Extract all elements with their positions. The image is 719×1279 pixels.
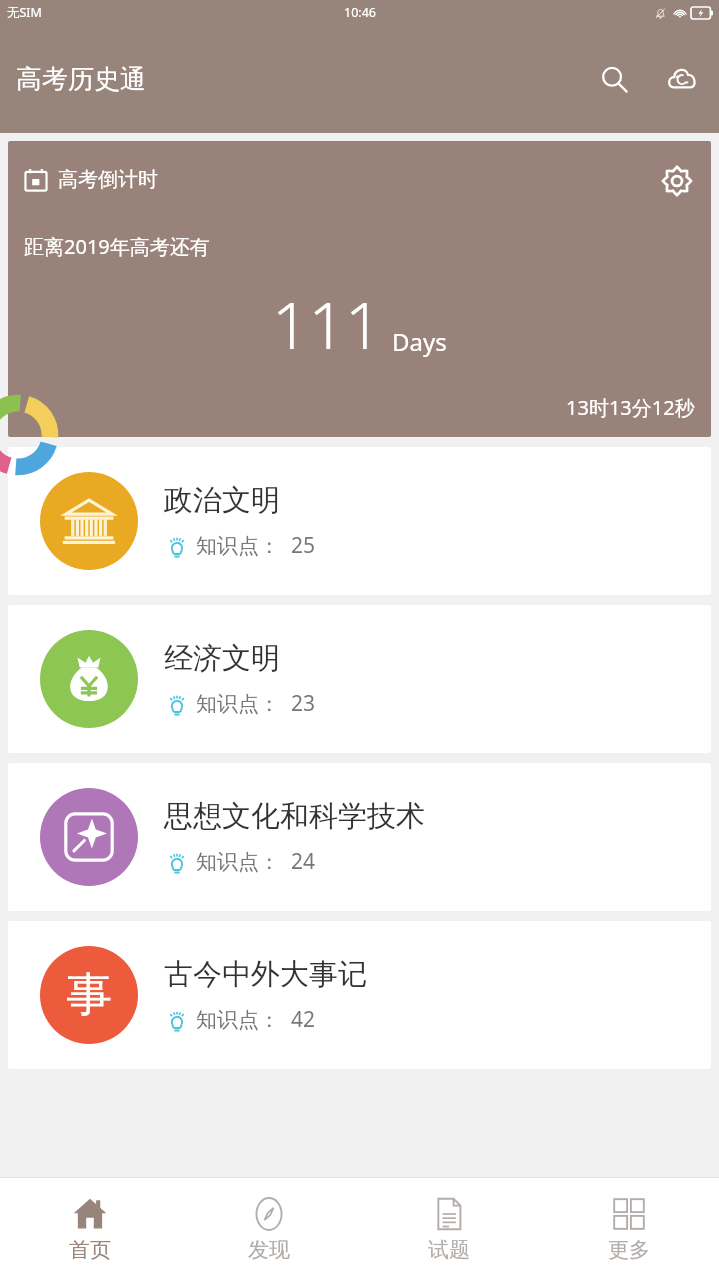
- staticText: 距离2019年高考还有: [24, 233, 210, 260]
- button[interactable]: 经济文明: [8, 605, 711, 753]
- button[interactable]: 首页: [0, 1178, 179, 1279]
- button[interactable]: Search: [591, 56, 637, 102]
- button[interactable]: 高考倒计时: [8, 141, 711, 437]
- staticText: 高考倒计时: [58, 167, 158, 192]
- staticText: 知识点： 42: [196, 1005, 315, 1034]
- button[interactable]: Assistant: [0, 393, 60, 477]
- staticText: 古今中外大事记: [164, 956, 367, 993]
- button[interactable]: 思想文化和科学技术: [8, 763, 711, 911]
- staticText: 思想文化和科学技术: [164, 798, 425, 835]
- staticText: 111: [272, 281, 382, 368]
- staticText: 试题: [428, 1237, 470, 1263]
- staticText: 13时13分12秒: [566, 394, 695, 421]
- staticText: 事: [66, 966, 112, 1024]
- button[interactable]: Sync: [659, 56, 705, 102]
- button[interactable]: 政治文明: [8, 447, 711, 595]
- staticText: 发现: [248, 1237, 290, 1263]
- staticText: 10:46: [344, 4, 376, 21]
- staticText: 政治文明: [164, 482, 280, 519]
- button[interactable]: Settings: [651, 155, 703, 207]
- button[interactable]: 试题: [359, 1178, 539, 1279]
- staticText: 知识点： 25: [196, 531, 315, 560]
- staticText: 无SIM: [7, 4, 42, 21]
- staticText: 首页: [69, 1237, 111, 1263]
- staticText: 高考历史通: [16, 63, 146, 96]
- staticText: 知识点： 23: [196, 689, 315, 718]
- button[interactable]: 更多: [539, 1178, 719, 1279]
- staticText: Days: [392, 325, 447, 358]
- staticText: 经济文明: [164, 640, 280, 677]
- staticText: 更多: [608, 1237, 650, 1263]
- staticText: 知识点： 24: [196, 847, 315, 876]
- button[interactable]: 发现: [179, 1178, 359, 1279]
- button[interactable]: 事: [8, 921, 711, 1069]
